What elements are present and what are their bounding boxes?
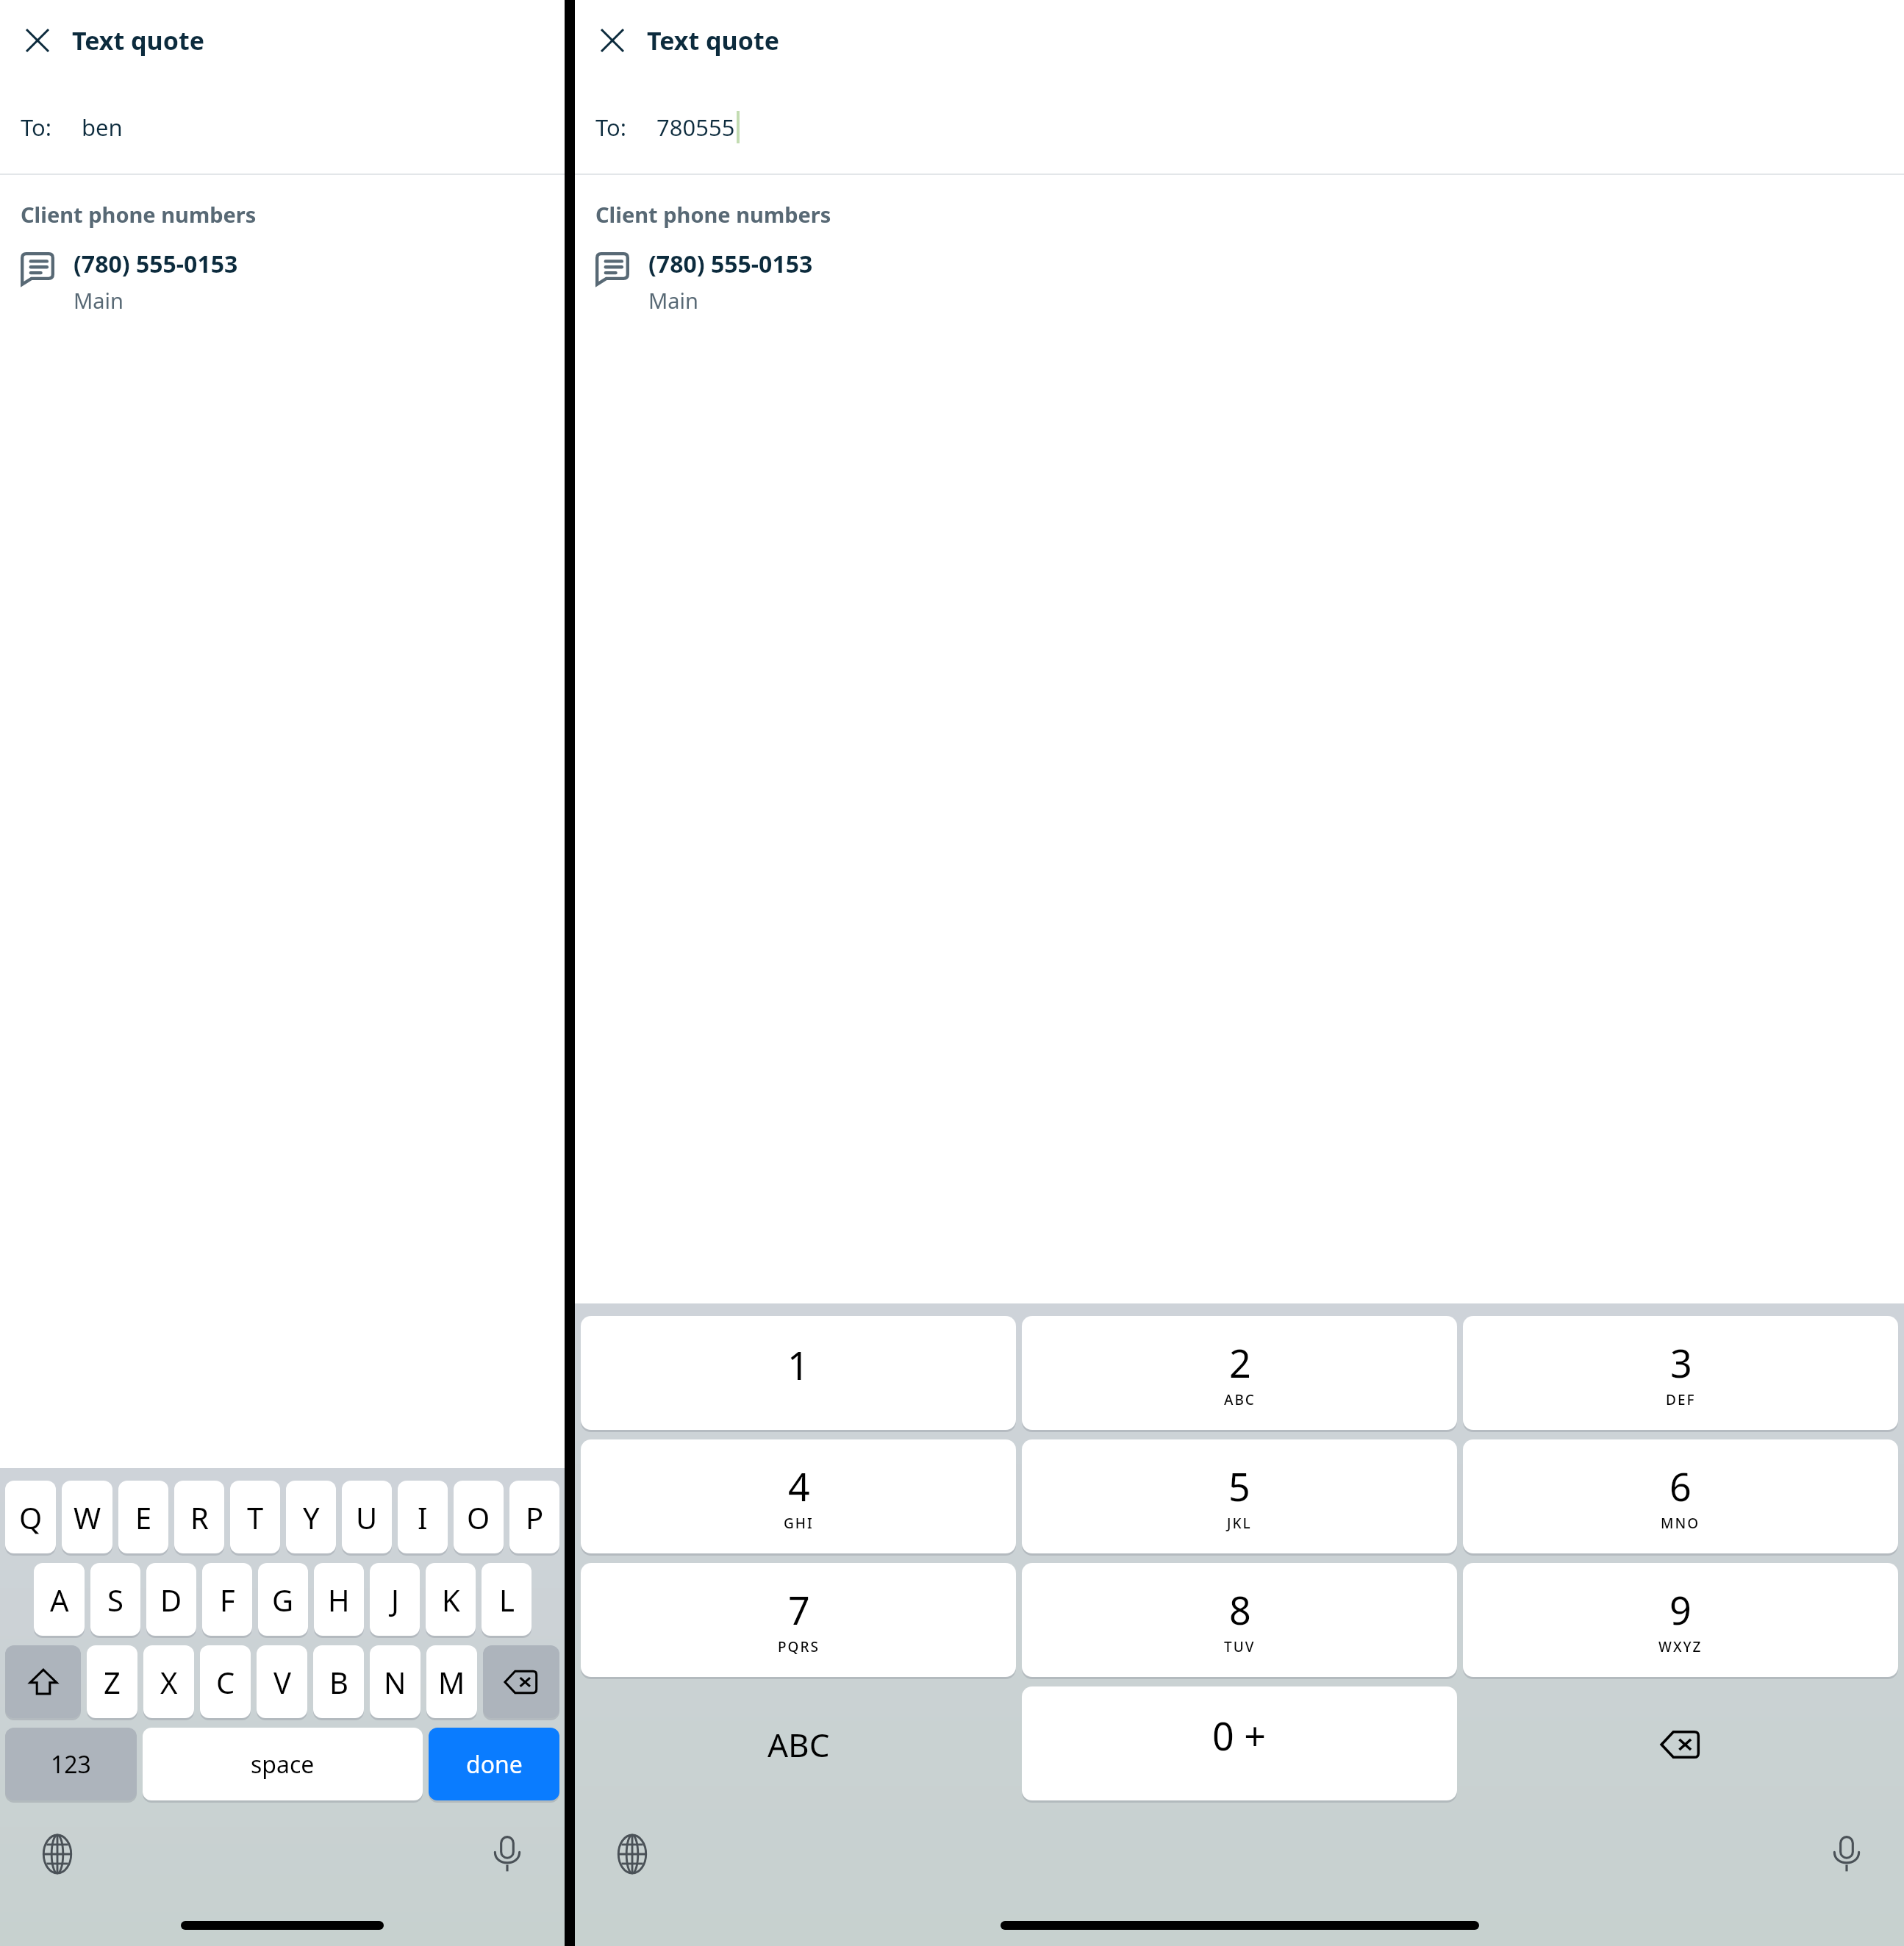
button[interactable]: 8 bbox=[1022, 1563, 1457, 1677]
button[interactable]: 123 bbox=[5, 1728, 137, 1800]
button[interactable]: To: bbox=[0, 81, 565, 174]
staticText: 9 bbox=[1669, 1584, 1692, 1636]
staticText: Y bbox=[303, 1498, 320, 1537]
button[interactable]: Q bbox=[5, 1481, 56, 1553]
button[interactable]: 2 bbox=[1022, 1316, 1457, 1430]
staticText: ABC bbox=[1224, 1390, 1256, 1409]
staticText: U bbox=[356, 1498, 378, 1537]
button[interactable]: 6 bbox=[1463, 1439, 1898, 1553]
staticText: 780555 bbox=[656, 112, 735, 143]
staticText: 4 bbox=[788, 1460, 810, 1512]
staticText: GHI bbox=[784, 1514, 814, 1533]
staticText: Main bbox=[648, 286, 698, 315]
button[interactable]: Dictate bbox=[1817, 1825, 1876, 1884]
staticText: Client phone numbers bbox=[595, 200, 831, 229]
button[interactable]: I bbox=[398, 1481, 448, 1553]
button[interactable]: 1 bbox=[581, 1316, 1016, 1430]
button[interactable]: space bbox=[143, 1728, 423, 1800]
button[interactable] bbox=[483, 1645, 559, 1718]
button[interactable]: Z bbox=[87, 1645, 137, 1718]
staticText: B bbox=[329, 1662, 348, 1702]
button[interactable]: A bbox=[34, 1563, 85, 1636]
button[interactable]: R bbox=[174, 1481, 224, 1553]
button[interactable]: Close bbox=[591, 19, 634, 62]
button[interactable]: 4 bbox=[581, 1439, 1016, 1553]
button[interactable]: U bbox=[342, 1481, 392, 1553]
button[interactable]: Close bbox=[16, 19, 59, 62]
button[interactable]: V bbox=[257, 1645, 307, 1718]
staticText: C bbox=[216, 1662, 235, 1702]
button[interactable]: (780) 555-0153 bbox=[575, 248, 1904, 315]
staticText: W bbox=[74, 1498, 101, 1537]
button[interactable]: G bbox=[258, 1563, 308, 1636]
staticText: 3 bbox=[1670, 1337, 1692, 1389]
staticText: Q bbox=[19, 1498, 43, 1537]
staticText: H bbox=[328, 1580, 350, 1620]
staticText: O bbox=[467, 1498, 490, 1537]
staticText: 6 bbox=[1669, 1460, 1692, 1512]
button[interactable]: 9 bbox=[1463, 1563, 1898, 1677]
staticText: (780) 555-0153 bbox=[74, 248, 238, 280]
button[interactable]: C bbox=[200, 1645, 251, 1718]
staticText: ABC bbox=[767, 1723, 830, 1767]
staticText: Text quote bbox=[72, 24, 204, 57]
button[interactable]: J bbox=[370, 1563, 420, 1636]
staticText: M bbox=[438, 1662, 465, 1702]
button[interactable]: M bbox=[426, 1645, 477, 1718]
staticText: PQRS bbox=[778, 1637, 820, 1656]
staticText: MNO bbox=[1661, 1514, 1700, 1533]
staticText: S bbox=[107, 1580, 124, 1620]
button[interactable]: W bbox=[62, 1481, 112, 1553]
button[interactable]: 7 bbox=[581, 1563, 1016, 1677]
staticText: D bbox=[160, 1580, 182, 1620]
staticText: JKL bbox=[1227, 1514, 1252, 1533]
button[interactable]: E bbox=[118, 1481, 168, 1553]
button[interactable]: S bbox=[90, 1563, 140, 1636]
button[interactable]: P bbox=[509, 1481, 559, 1553]
button[interactable]: 0 + bbox=[1022, 1686, 1457, 1800]
button[interactable]: F bbox=[202, 1563, 252, 1636]
staticText: Client phone numbers bbox=[21, 200, 257, 229]
button[interactable]: Dictate bbox=[478, 1825, 537, 1884]
staticText: N bbox=[384, 1662, 407, 1702]
button[interactable]: D bbox=[146, 1563, 196, 1636]
staticText: K bbox=[442, 1580, 460, 1620]
staticText: Text quote bbox=[647, 24, 779, 57]
staticText: G bbox=[272, 1580, 294, 1620]
button[interactable]: Backspace bbox=[1460, 1683, 1901, 1806]
staticText: J bbox=[391, 1580, 399, 1620]
button[interactable]: Change keyboard bbox=[28, 1825, 87, 1884]
button[interactable]: done bbox=[429, 1728, 559, 1800]
button[interactable]: To: bbox=[575, 81, 1904, 174]
button[interactable]: X bbox=[143, 1645, 194, 1718]
button[interactable]: H bbox=[314, 1563, 364, 1636]
staticText: TUV bbox=[1224, 1637, 1256, 1656]
button[interactable]: (780) 555-0153 bbox=[0, 248, 565, 315]
staticText: T bbox=[247, 1498, 264, 1537]
button[interactable]: 3 bbox=[1463, 1316, 1898, 1430]
button[interactable]: O bbox=[454, 1481, 504, 1553]
staticText: Main bbox=[74, 286, 124, 315]
staticText: A bbox=[50, 1580, 69, 1620]
staticText: F bbox=[220, 1580, 235, 1620]
staticText: space bbox=[251, 1748, 315, 1781]
staticText: To: bbox=[21, 112, 52, 143]
button[interactable]: N bbox=[370, 1645, 420, 1718]
staticText: To: bbox=[595, 112, 627, 143]
staticText: 8 bbox=[1229, 1584, 1251, 1636]
button[interactable]: B bbox=[313, 1645, 364, 1718]
button[interactable]: T bbox=[230, 1481, 280, 1553]
button[interactable]: L bbox=[482, 1563, 532, 1636]
staticText: I bbox=[418, 1498, 428, 1537]
button[interactable] bbox=[5, 1645, 81, 1718]
button[interactable]: K bbox=[426, 1563, 476, 1636]
button[interactable]: Change keyboard bbox=[603, 1825, 662, 1884]
button[interactable]: Y bbox=[286, 1481, 336, 1553]
staticText: done bbox=[466, 1748, 523, 1781]
staticText: 5 bbox=[1228, 1460, 1250, 1512]
button[interactable]: ABC bbox=[578, 1683, 1019, 1806]
staticText: 0 + bbox=[1212, 1709, 1267, 1761]
button[interactable]: 5 bbox=[1022, 1439, 1457, 1553]
staticText: X bbox=[160, 1662, 178, 1702]
staticText: 1 bbox=[787, 1339, 809, 1391]
